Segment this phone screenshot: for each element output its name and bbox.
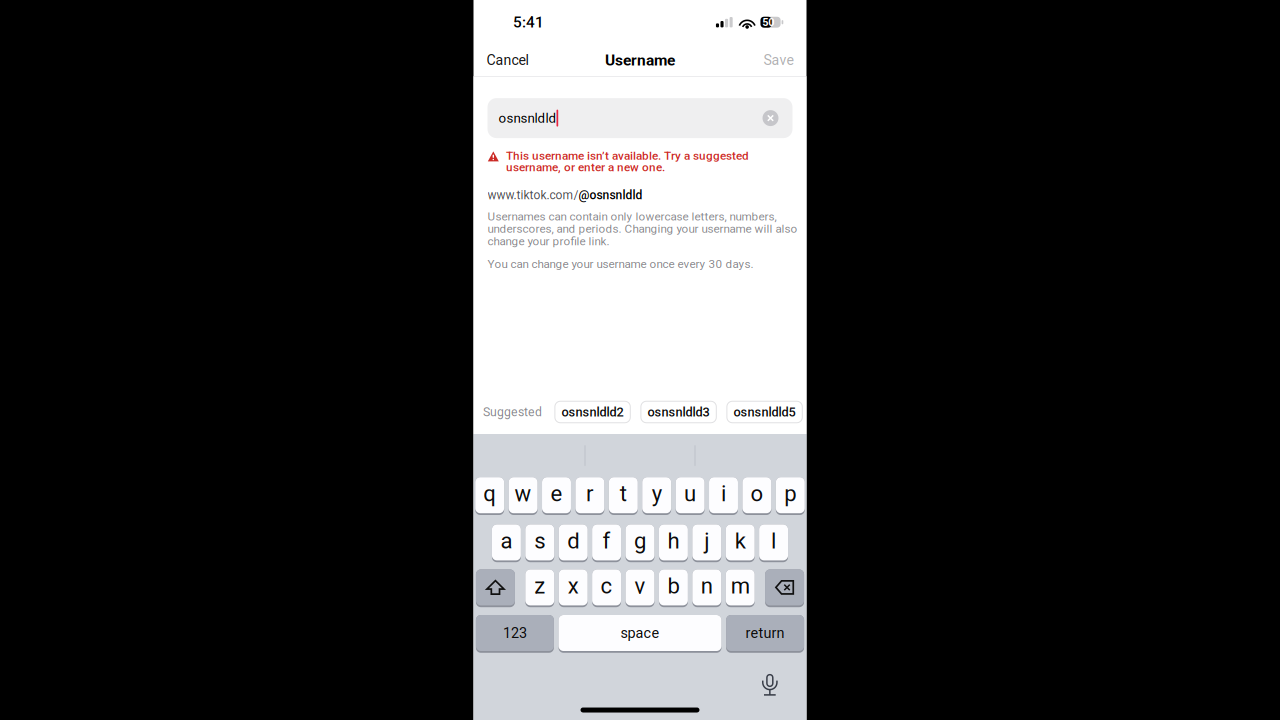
staticText: n [701, 573, 713, 599]
button[interactable]: o [742, 477, 771, 515]
button[interactable]: u [676, 477, 704, 515]
staticText: t [620, 481, 627, 507]
staticText: Username [605, 51, 675, 69]
staticText: h [667, 528, 679, 554]
staticText: q [483, 481, 496, 507]
staticText: e [550, 481, 562, 507]
button[interactable]: d [559, 524, 588, 562]
staticText: osnsnldld [498, 110, 556, 126]
staticText: return [746, 625, 785, 641]
button[interactable]: p [776, 477, 805, 515]
button[interactable]: a [492, 524, 521, 562]
button[interactable]: y [642, 477, 671, 515]
staticText: a [500, 528, 512, 554]
button[interactable]: Delete [765, 569, 804, 607]
staticText: s [534, 528, 545, 554]
button[interactable] [487, 98, 792, 138]
button[interactable]: Clear text [759, 106, 781, 130]
button[interactable]: v [625, 569, 654, 607]
button[interactable]: b [659, 569, 688, 607]
staticText: u [684, 481, 696, 507]
staticText: f [603, 528, 611, 554]
button[interactable]: return [726, 615, 804, 653]
button[interactable]: n [692, 569, 721, 607]
staticText: This username isn’t available. Try a sug… [506, 149, 749, 163]
button[interactable]: l [759, 524, 788, 562]
staticText: d [567, 528, 579, 554]
staticText: z [534, 573, 545, 599]
button[interactable]: j [692, 524, 721, 562]
staticText: j [704, 528, 709, 554]
button[interactable]: h [659, 524, 688, 562]
staticText: 5:41 [513, 13, 544, 31]
staticText: osnsnldld3 [648, 404, 710, 419]
button[interactable]: osnsnldld2 [555, 401, 630, 423]
staticText: w [515, 481, 532, 507]
staticText: x [568, 573, 579, 599]
staticText: You can change your username once every … [487, 257, 753, 271]
staticText: username, or enter a new one. [506, 160, 665, 174]
button[interactable]: space [558, 615, 721, 653]
staticText: osnsnldld2 [562, 404, 624, 419]
button[interactable]: f [592, 524, 621, 562]
button[interactable]: g [625, 524, 654, 562]
button[interactable]: t [609, 477, 638, 515]
staticText: 123 [503, 625, 527, 641]
staticText: g [634, 528, 646, 554]
button[interactable]: i [709, 477, 738, 515]
button[interactable]: Shift [476, 569, 515, 607]
staticText: www.tiktok.com/ [487, 188, 578, 202]
button[interactable]: m [726, 569, 755, 607]
button[interactable]: osnsnldld5 [727, 401, 802, 423]
button[interactable]: q [475, 477, 504, 515]
button[interactable]: 123 [476, 615, 554, 653]
staticText: Suggested [483, 405, 542, 419]
staticText: c [601, 573, 613, 599]
staticText: 50 [762, 16, 774, 29]
button[interactable]: e [542, 477, 571, 515]
button[interactable]: s [525, 524, 554, 562]
button[interactable]: z [525, 569, 554, 607]
button[interactable]: c [592, 569, 621, 607]
staticText: b [667, 573, 679, 599]
staticText: v [634, 573, 645, 599]
staticText: osnsnldld5 [734, 404, 796, 419]
button[interactable]: Dictate [757, 668, 783, 701]
staticText: i [721, 481, 726, 507]
staticText: space [620, 625, 659, 641]
button[interactable]: Save [749, 44, 806, 77]
staticText: l [771, 528, 776, 554]
staticText: Usernames can contain only lowercase let… [487, 210, 776, 223]
button[interactable]: Cancel [473, 44, 542, 77]
staticText: Cancel [486, 52, 528, 68]
button[interactable]: k [726, 524, 755, 562]
button[interactable]: osnsnldld3 [641, 401, 716, 423]
staticText: @osnsnldld [578, 188, 642, 202]
staticText: r [586, 481, 594, 507]
staticText: change your profile link. [487, 234, 609, 248]
staticText: underscores, and periods. Changing your … [487, 222, 797, 236]
staticText: m [731, 573, 750, 599]
staticText: Save [763, 52, 793, 68]
staticText: y [652, 481, 662, 507]
staticText: p [784, 481, 796, 507]
button[interactable]: r [575, 477, 604, 515]
staticText: o [750, 481, 763, 507]
button[interactable]: w [509, 477, 537, 515]
staticText: k [735, 528, 746, 554]
button[interactable]: x [559, 569, 588, 607]
